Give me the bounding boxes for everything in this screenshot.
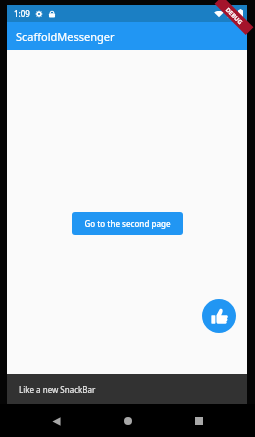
staticText: 1:09 <box>14 8 30 19</box>
button[interactable]: Home <box>113 406 143 436</box>
button[interactable]: Like a new SnackBar <box>7 374 247 404</box>
staticText: ScaffoldMessenger <box>16 29 115 44</box>
button[interactable]: Recent apps <box>184 406 214 436</box>
staticText: Like a new SnackBar <box>19 384 96 395</box>
staticText: Go to the second page <box>84 218 171 229</box>
button[interactable]: Back <box>41 406 71 436</box>
staticText: DEBUG <box>224 6 244 26</box>
button[interactable]: Go to the second page <box>72 212 183 235</box>
button[interactable]: Like <box>202 299 236 333</box>
